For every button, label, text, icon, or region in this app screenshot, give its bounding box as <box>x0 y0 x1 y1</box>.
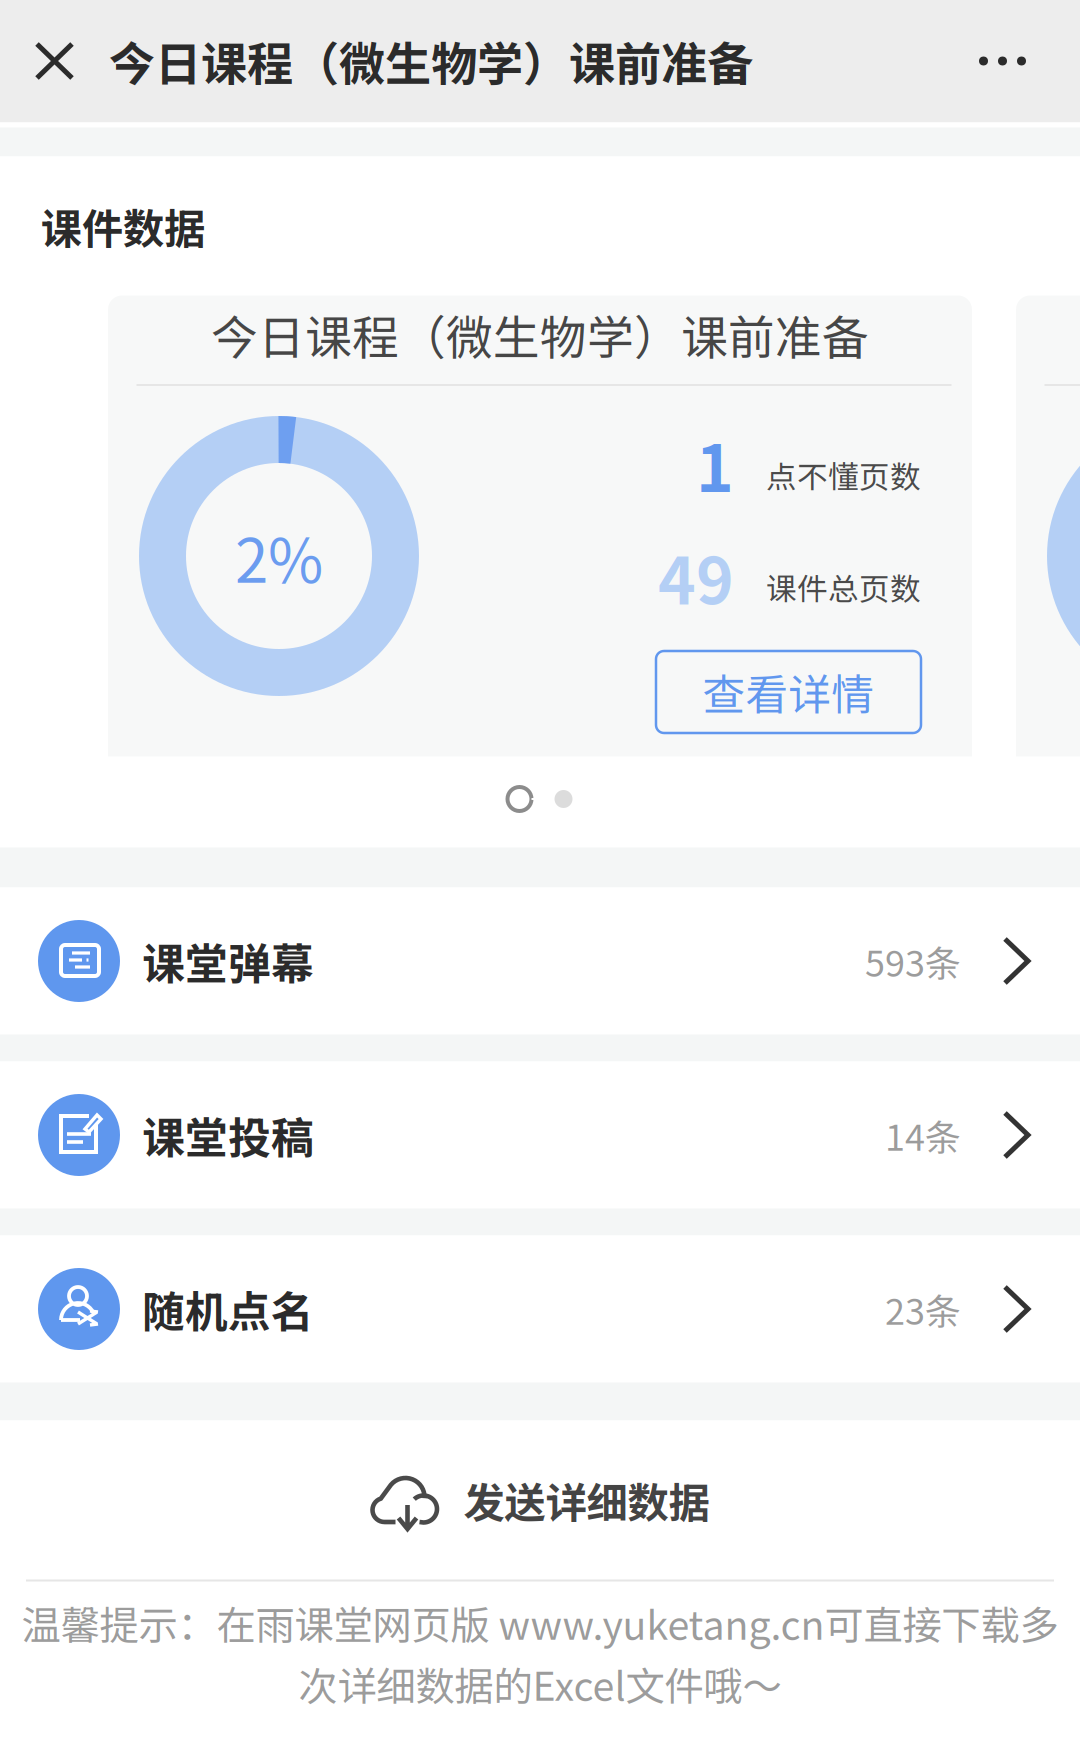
button[interactable]: 课堂弹幕 <box>0 887 1080 1034</box>
button[interactable]: Close <box>0 0 109 122</box>
staticText: 随机点名 <box>142 1278 314 1340</box>
staticText: 课堂投稿 <box>142 1104 314 1166</box>
button[interactable]: 查看详情 <box>656 651 921 733</box>
staticText: 课件数据 <box>41 196 205 256</box>
staticText: 今日课程（微生物学）课前准备 <box>109 28 753 94</box>
button[interactable]: 随机点名 <box>0 1235 1080 1382</box>
button[interactable]: 课堂投稿 <box>0 1061 1080 1208</box>
staticText: 温馨提示：在雨课堂网页版 www.yuketang.cn可直接下载多 <box>21 1594 1058 1651</box>
staticText: 593条 <box>865 935 961 987</box>
staticText: 2% <box>235 513 323 600</box>
staticText: 1 <box>696 418 734 510</box>
staticText: 点不懂页数 <box>766 453 921 497</box>
staticText: 课件总页数 <box>766 565 921 609</box>
staticText: 14条 <box>885 1109 961 1161</box>
staticText: 次详细数据的Excel文件哦～ <box>298 1655 781 1712</box>
button[interactable]: 发送详细数据 <box>0 1420 1080 1579</box>
staticText: 49 <box>658 530 734 622</box>
staticText: 查看详情 <box>702 661 874 723</box>
staticText: 23条 <box>885 1283 961 1335</box>
staticText: 发送详细数据 <box>463 1470 709 1530</box>
staticText: 课堂弹幕 <box>142 930 314 992</box>
staticText: 今日课程（微生物学）课前准备 <box>211 301 869 368</box>
button[interactable]: More options <box>979 0 1080 122</box>
